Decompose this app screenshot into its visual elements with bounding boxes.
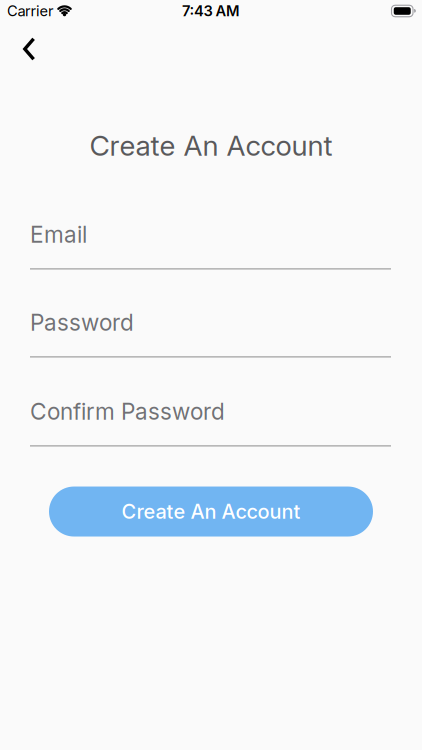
button[interactable]: Create An Account xyxy=(49,486,373,536)
staticText: Email xyxy=(30,221,87,248)
button[interactable]: Email xyxy=(30,221,391,269)
staticText: Confirm Password xyxy=(30,398,225,425)
staticText: 7:43 AM xyxy=(182,2,240,20)
staticText: Carrier xyxy=(7,2,54,20)
button[interactable]: Password xyxy=(30,309,391,357)
staticText: Password xyxy=(30,309,134,336)
button[interactable]: Back xyxy=(0,22,35,61)
staticText: Create An Account xyxy=(89,129,332,162)
staticText: Create An Account xyxy=(121,500,300,523)
button[interactable]: Confirm Password xyxy=(30,398,391,446)
